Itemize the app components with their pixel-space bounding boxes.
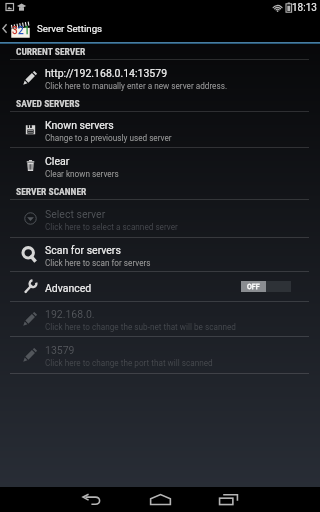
button[interactable]: Recent apps — [194, 487, 263, 512]
button[interactable]: Select server — [0, 200, 320, 238]
button[interactable]: 192.168.0. — [0, 302, 320, 337]
button[interactable]: http://192.168.0.14:13579 — [0, 60, 320, 96]
staticText: 3 — [12, 25, 18, 37]
button[interactable]: Scan for servers — [0, 238, 320, 272]
staticText: CURRENT SERVER — [16, 46, 86, 57]
staticText: Advanced — [45, 282, 92, 294]
button[interactable]: Back — [56, 487, 125, 512]
staticText: Known servers — [45, 119, 114, 131]
staticText: SAVED SERVERS — [16, 98, 80, 109]
staticText: 18:13 — [292, 2, 317, 14]
staticText: Click here to change the port that will … — [45, 358, 213, 368]
button[interactable]: Advanced — [0, 272, 320, 302]
button[interactable]: Navigate up — [0, 15, 320, 42]
button[interactable]: Home — [126, 487, 195, 512]
staticText: 192.168.0. — [45, 308, 95, 320]
staticText: Scan for servers — [45, 244, 121, 256]
button[interactable]: 13579 — [0, 337, 320, 374]
staticText: Click here to select a scanned server — [45, 222, 178, 232]
staticText: Server Settings — [37, 23, 103, 34]
staticText: 2 — [18, 25, 24, 37]
staticText: Change to a previously used server — [45, 133, 172, 143]
staticText: Click here to change the sub-net that wi… — [45, 322, 236, 332]
staticText: Clear — [45, 155, 70, 167]
staticText: http://192.168.0.14:13579 — [45, 67, 168, 79]
staticText: OFF — [247, 283, 260, 291]
staticText: Click here to manually enter a new serve… — [45, 81, 228, 91]
staticText: Click here to scan for servers — [45, 258, 151, 268]
staticText: 1 — [24, 25, 30, 37]
staticText: Clear known servers — [45, 169, 119, 179]
staticText: SERVER SCANNER — [16, 186, 87, 197]
button[interactable]: Advanced toggle — [241, 281, 291, 292]
button[interactable]: Known servers — [0, 112, 320, 148]
button[interactable]: Clear — [0, 148, 320, 184]
staticText: 13579 — [45, 344, 75, 356]
staticText: Select server — [45, 208, 106, 220]
